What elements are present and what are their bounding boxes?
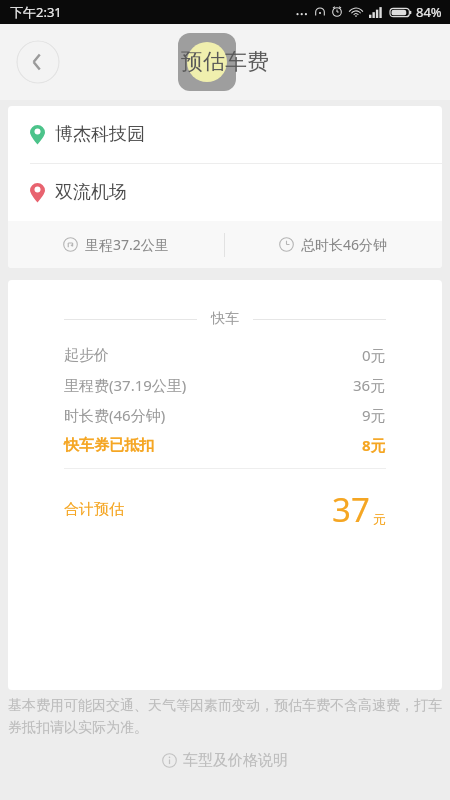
staticText: 合计预估 — [64, 500, 124, 519]
button[interactable]: Back — [16, 40, 60, 84]
staticText: 84% — [416, 3, 442, 21]
staticText: 总时长46分钟 — [301, 235, 388, 254]
staticText: 快车 — [211, 310, 239, 328]
staticText: 37 — [332, 487, 370, 532]
button[interactable]: 车型及价格说明 — [8, 751, 442, 770]
staticText: 起步价 — [64, 346, 109, 365]
button[interactable]: 双流机场 — [8, 164, 442, 221]
staticText: 里程37.2公里 — [85, 235, 169, 254]
staticText: 预估车费 — [181, 48, 269, 76]
staticText: 车型及价格说明 — [183, 751, 288, 770]
staticText: 里程费(37.19公里) — [64, 375, 187, 395]
staticText: 36元 — [353, 375, 386, 395]
staticText: 基本费用可能因交通、天气等因素而变动，预估车费不含高速费，打车券抵扣请以实际为准… — [8, 697, 442, 737]
button[interactable]: 博杰科技园 — [8, 106, 442, 163]
staticText: 下午2:31 — [10, 3, 62, 21]
staticText: 快车券已抵扣 — [64, 436, 154, 455]
staticText: 0元 — [362, 345, 386, 365]
staticText: 博杰科技园 — [55, 123, 145, 146]
staticText: 9元 — [362, 405, 386, 425]
staticText: 元 — [373, 511, 386, 527]
staticText: 双流机场 — [55, 181, 127, 204]
staticText: 8元 — [362, 435, 386, 455]
staticText: 时长费(46分钟) — [64, 405, 166, 425]
